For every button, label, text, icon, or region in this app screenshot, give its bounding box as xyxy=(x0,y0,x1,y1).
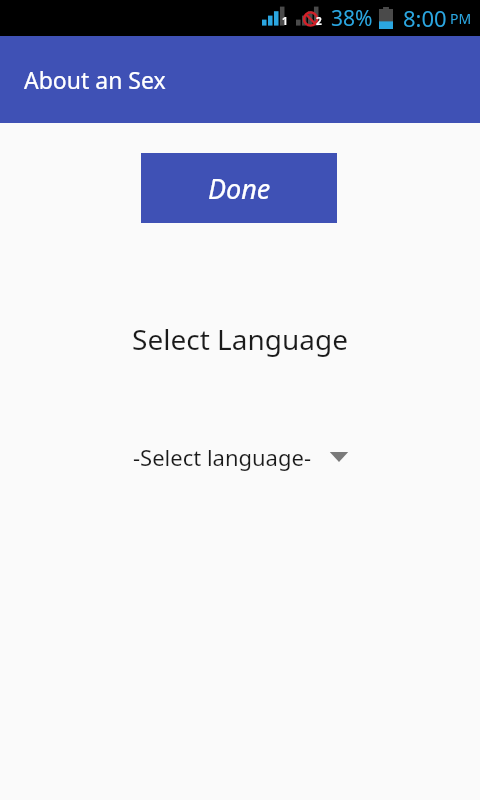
staticText: Select Language xyxy=(132,320,348,358)
staticText: 2 xyxy=(316,14,322,28)
staticText: 38% xyxy=(331,4,373,33)
staticText: 1 xyxy=(282,14,288,28)
button[interactable]: -Select language- xyxy=(133,439,357,475)
staticText: PM xyxy=(450,9,472,28)
button[interactable]: Done xyxy=(141,153,337,223)
staticText: About an Sex xyxy=(24,64,166,95)
staticText: 8:00 xyxy=(403,3,447,33)
staticText: Done xyxy=(208,170,271,207)
other: Open language dropdown xyxy=(329,447,349,467)
staticText: -Select language- xyxy=(133,442,311,472)
